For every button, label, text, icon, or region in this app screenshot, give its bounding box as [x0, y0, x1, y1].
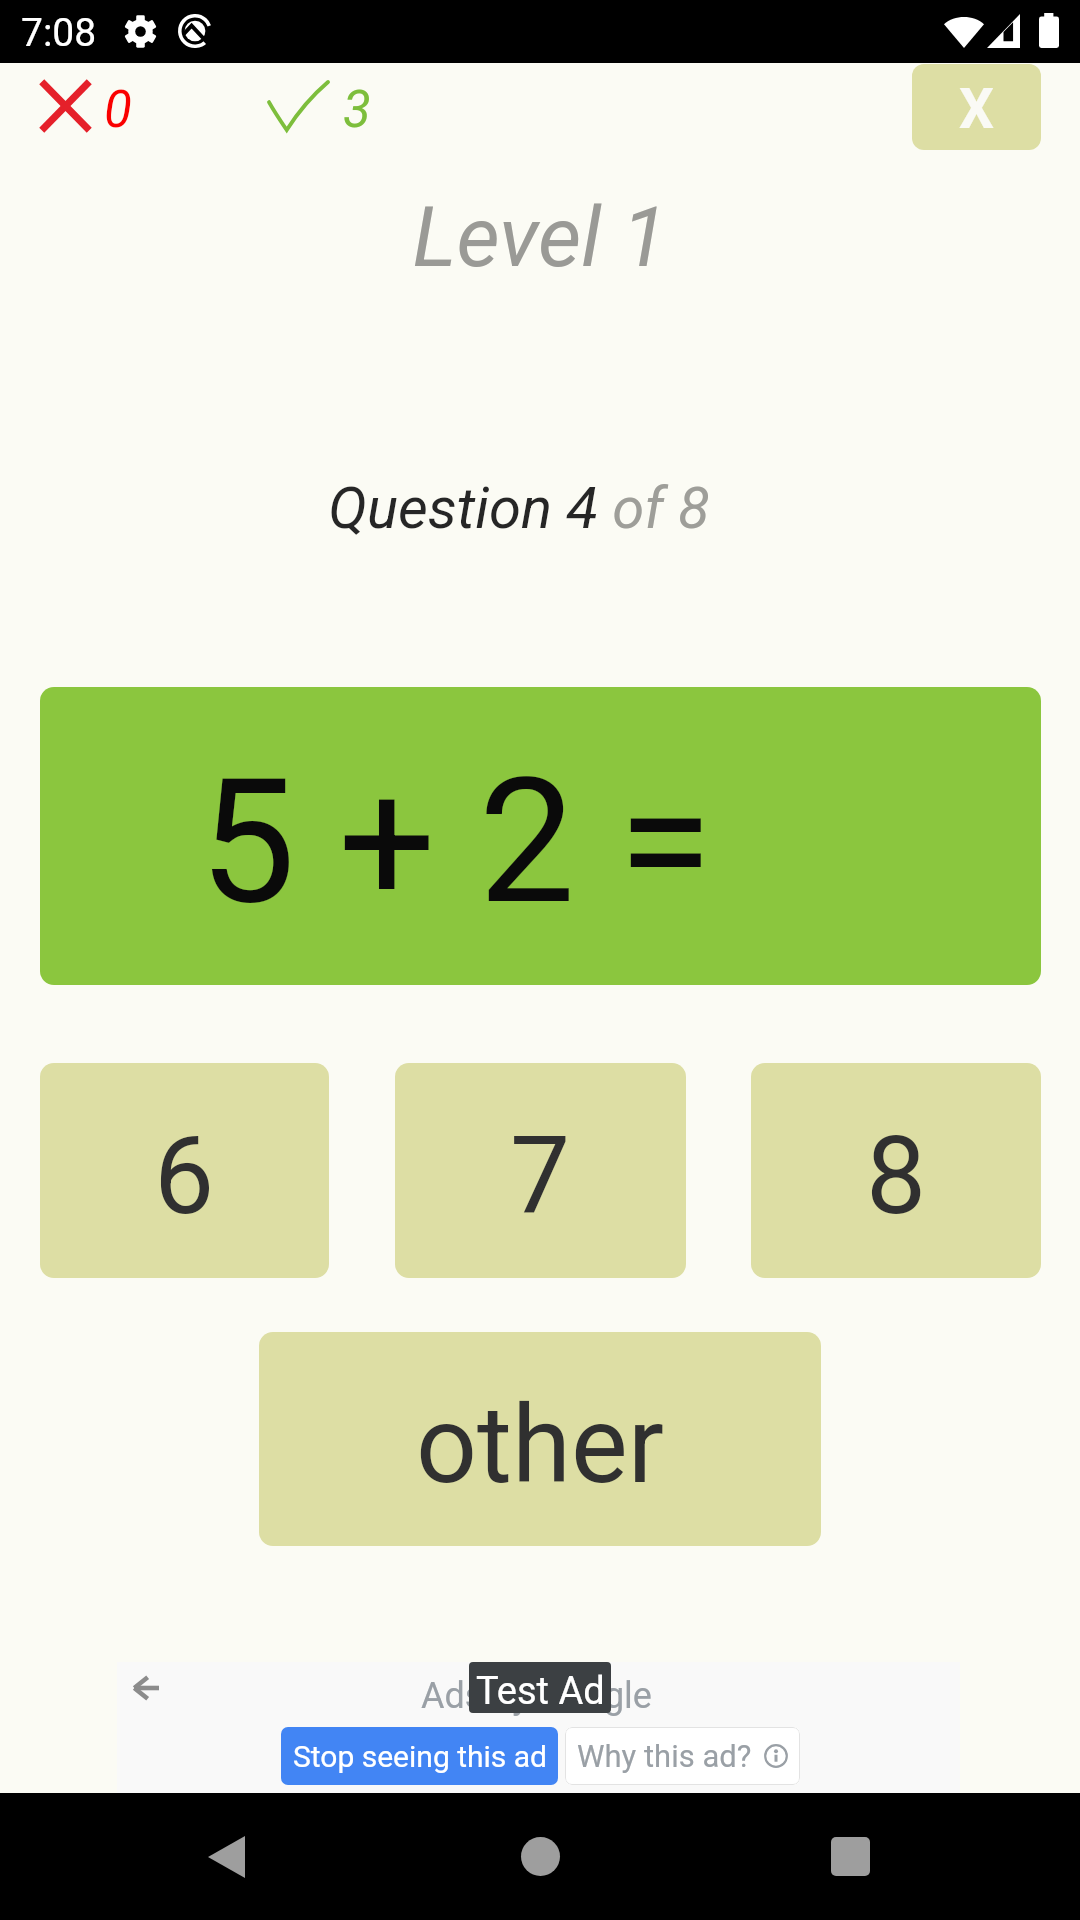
staticText: 7	[510, 1114, 571, 1239]
button[interactable]: 8	[751, 1063, 1041, 1278]
staticText: 8	[866, 1114, 927, 1239]
staticText: X	[959, 77, 994, 141]
staticText: Test Ad	[476, 1669, 605, 1714]
button[interactable]: 5 + 2 =	[40, 687, 1041, 985]
button[interactable]: 7	[395, 1063, 686, 1278]
staticText: Level 1	[0, 188, 1080, 286]
staticText: Stop seeing this ad	[293, 1739, 547, 1774]
button[interactable]: Stop seeing this ad	[281, 1727, 558, 1785]
staticText: 6	[154, 1114, 215, 1239]
button[interactable]: 6	[40, 1063, 329, 1278]
staticText: 3	[343, 80, 371, 140]
staticText: Why this ad?	[577, 1738, 752, 1774]
button[interactable]: Close	[912, 64, 1041, 150]
staticText: Question 4 of 8	[0, 474, 1059, 542]
button[interactable]: Back	[120, 1663, 170, 1713]
staticText: other	[416, 1383, 664, 1508]
staticText: 0	[104, 80, 132, 140]
staticText: 5 + 2 =	[199, 741, 713, 943]
button[interactable]: Why this ad?	[565, 1727, 800, 1785]
button[interactable]: Recents	[790, 1793, 910, 1920]
button[interactable]: other	[259, 1332, 821, 1546]
button[interactable]: Home	[480, 1793, 600, 1920]
staticText: 7:08	[21, 10, 97, 56]
button[interactable]: Back	[166, 1793, 286, 1920]
staticText: Ads by Google	[115, 1675, 958, 1717]
